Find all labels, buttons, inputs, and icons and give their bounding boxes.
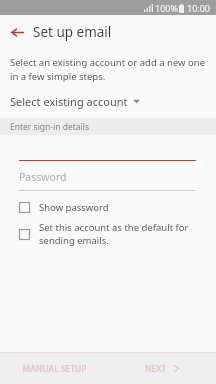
button[interactable]: Password (0, 165, 216, 194)
staticText: Set this account as the default for send… (39, 221, 202, 247)
button[interactable]: Select existing account (0, 92, 216, 111)
button[interactable]: MANUAL SETUP (0, 353, 108, 384)
button[interactable]: NEXT (108, 353, 216, 384)
button[interactable]: Set this account as the default for send… (0, 221, 216, 249)
button[interactable]: Show password (0, 201, 216, 216)
staticText: Select an existing account or add a new … (10, 56, 206, 83)
staticText: Select existing account (10, 94, 128, 109)
button[interactable]: Navigate up (6, 21, 28, 43)
staticText: Enter sign-in details (10, 121, 90, 133)
staticText: MANUAL SETUP (22, 363, 87, 375)
staticText: Set up email (33, 23, 112, 41)
staticText: 10:00 (187, 2, 211, 14)
button[interactable] (0, 135, 216, 165)
staticText: Show password (39, 201, 109, 214)
staticText: Password (19, 170, 67, 184)
staticText: NEXT (145, 363, 167, 375)
staticText: 100% (155, 2, 178, 14)
